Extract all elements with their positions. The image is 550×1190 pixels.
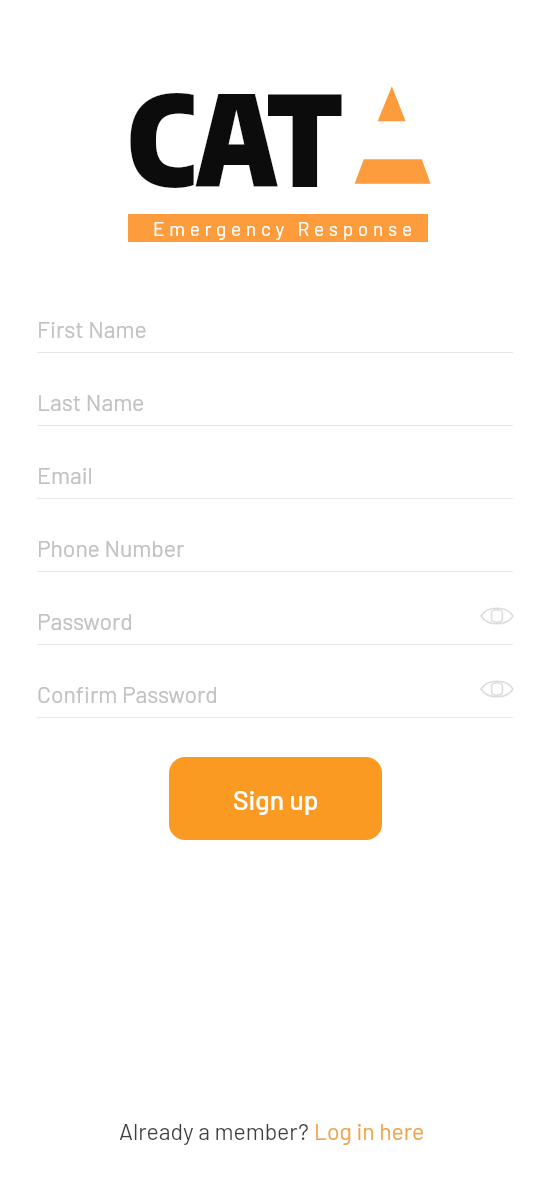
staticText: Phone Number [37,534,185,562]
staticText: First Name [37,315,147,343]
staticText: Confirm Password [37,680,218,708]
staticText: Password [37,607,133,635]
button[interactable]: Sign up [169,757,382,840]
button[interactable]: Show password [478,601,516,631]
staticText: Email [37,461,93,489]
button[interactable]: Show password [478,674,516,704]
button[interactable]: Log in here [314,1117,425,1145]
staticText: Log in here [314,1117,425,1145]
button[interactable]: Last Name [37,353,513,426]
button[interactable]: Email [37,426,513,499]
staticText: Emergency Response [153,217,417,240]
button[interactable]: Confirm Password [37,645,513,718]
staticText: Last Name [37,388,145,416]
staticText: Already a member? [119,1117,314,1145]
staticText: Sign up [233,783,319,815]
button[interactable]: Password [37,572,513,645]
button[interactable]: First Name [37,280,513,353]
staticText: CAT [127,58,342,214]
button[interactable]: Phone Number [37,499,513,572]
